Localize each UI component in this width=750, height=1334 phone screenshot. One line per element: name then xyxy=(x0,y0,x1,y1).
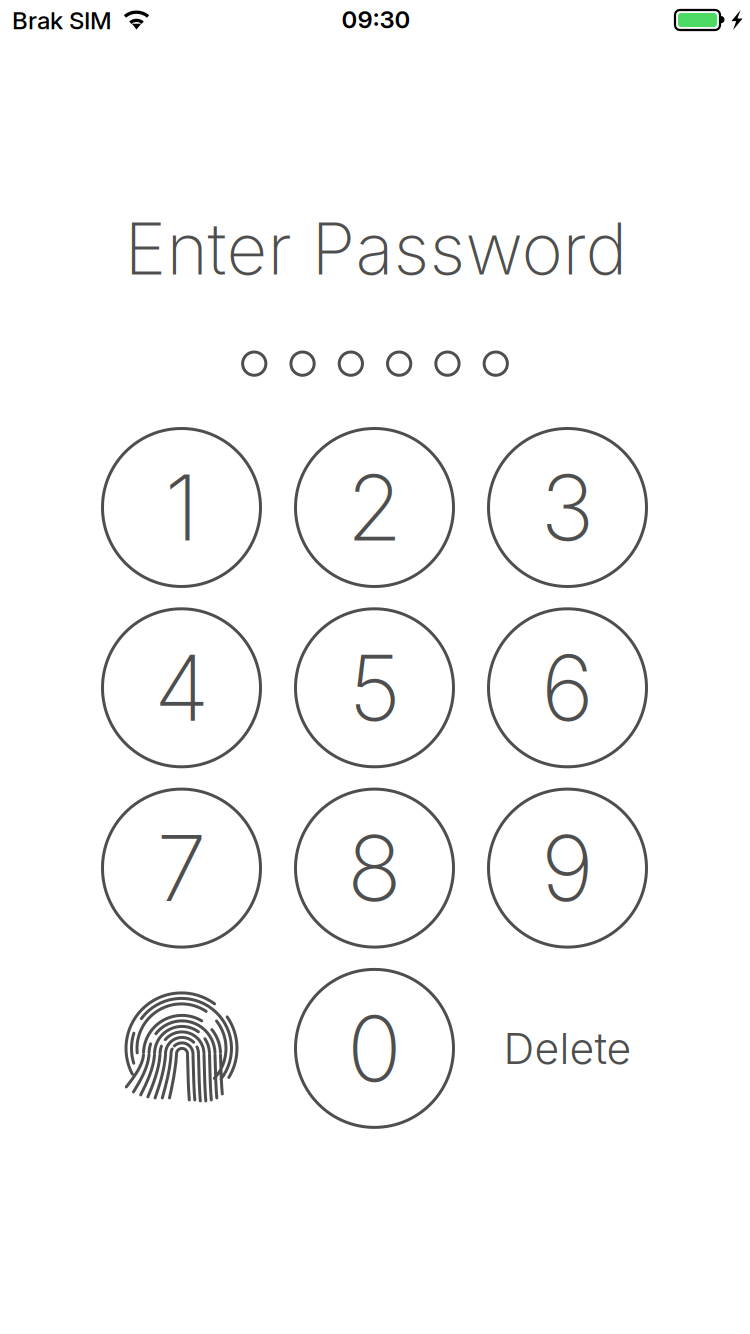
button[interactable]: Delete xyxy=(487,968,648,1129)
staticText: 0 xyxy=(347,993,402,1103)
staticText: 2 xyxy=(346,453,402,562)
staticText: 4 xyxy=(154,633,209,743)
button[interactable]: Unlock with Touch ID xyxy=(101,968,262,1129)
staticText: 3 xyxy=(540,453,594,562)
button[interactable]: 2 xyxy=(294,427,455,588)
staticText: 6 xyxy=(541,633,594,743)
staticText: 9 xyxy=(541,813,594,923)
button[interactable]: 6 xyxy=(487,607,648,768)
button[interactable]: 9 xyxy=(487,788,648,949)
staticText: 8 xyxy=(347,813,402,923)
staticText: 5 xyxy=(348,633,400,743)
staticText: 7 xyxy=(156,813,206,923)
staticText: Brak SIM xyxy=(12,6,112,35)
staticText: 09:30 xyxy=(341,5,410,34)
button[interactable]: 1 xyxy=(101,427,262,588)
button[interactable]: 0 xyxy=(294,968,455,1129)
button[interactable]: 7 xyxy=(101,788,262,949)
button[interactable]: 8 xyxy=(294,788,455,949)
staticText: Enter Password xyxy=(124,206,627,291)
staticText: Delete xyxy=(503,1023,631,1074)
staticText: 1 xyxy=(164,453,198,562)
button[interactable]: 5 xyxy=(294,607,455,768)
button[interactable]: 3 xyxy=(487,427,648,588)
button[interactable]: 4 xyxy=(101,607,262,768)
